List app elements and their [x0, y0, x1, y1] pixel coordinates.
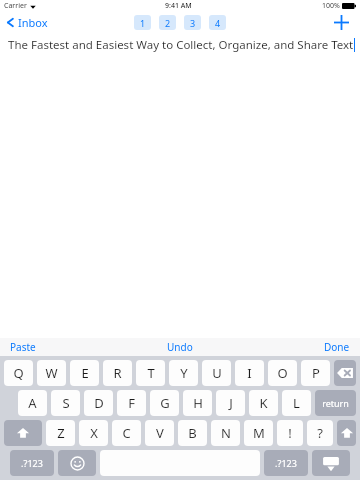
button[interactable]: G: [150, 390, 179, 416]
staticText: A: [28, 394, 37, 412]
button[interactable]: 3: [184, 15, 201, 30]
staticText: F: [128, 394, 135, 412]
staticText: J: [229, 394, 233, 412]
button[interactable]: Shift: [337, 420, 356, 446]
staticText: Y: [180, 364, 188, 382]
button[interactable]: Done: [324, 340, 350, 354]
staticText: The Fastest and Easiest Way to Collect, …: [8, 37, 354, 53]
button[interactable]: T: [136, 360, 165, 386]
button[interactable]: V: [145, 420, 174, 446]
staticText: 9:41 AM: [165, 1, 192, 11]
staticText: V: [156, 424, 164, 442]
button[interactable]: Y: [169, 360, 198, 386]
button[interactable]: 4: [209, 15, 226, 30]
button[interactable]: 1: [134, 15, 151, 30]
staticText: P: [312, 364, 320, 382]
staticText: E: [81, 364, 89, 382]
button[interactable]: O: [268, 360, 297, 386]
staticText: C: [122, 424, 131, 442]
staticText: K: [259, 394, 268, 412]
staticText: Paste: [10, 340, 36, 354]
staticText: Z: [57, 424, 65, 442]
button[interactable]: Hide keyboard: [312, 450, 350, 476]
button[interactable]: .?123: [264, 450, 308, 476]
staticText: D: [94, 394, 104, 412]
button[interactable]: return: [315, 390, 356, 416]
button[interactable]: E: [70, 360, 99, 386]
staticText: T: [147, 364, 155, 382]
staticText: W: [45, 364, 58, 382]
staticText: 100%: [322, 1, 340, 11]
button[interactable]: F: [117, 390, 146, 416]
button[interactable]: B: [178, 420, 207, 446]
staticText: R: [113, 364, 122, 382]
staticText: S: [62, 394, 70, 412]
button[interactable]: L: [282, 390, 311, 416]
staticText: !: [288, 424, 292, 442]
button[interactable]: K: [249, 390, 278, 416]
staticText: .?123: [275, 457, 297, 469]
button[interactable]: N: [211, 420, 240, 446]
staticText: M: [253, 424, 265, 442]
button[interactable]: S: [51, 390, 80, 416]
button[interactable]: Z: [46, 420, 75, 446]
button[interactable]: P: [301, 360, 330, 386]
staticText: .?123: [21, 457, 43, 469]
button[interactable]: D: [84, 390, 113, 416]
button[interactable]: 2: [159, 15, 176, 30]
staticText: H: [193, 394, 203, 412]
staticText: Done: [324, 340, 350, 354]
button[interactable]: C: [112, 420, 141, 446]
staticText: I: [247, 364, 252, 382]
button[interactable]: I: [235, 360, 264, 386]
staticText: Carrier: [4, 1, 27, 11]
button[interactable]: ?: [307, 420, 333, 446]
button[interactable]: .?123: [10, 450, 54, 476]
staticText: Undo: [167, 340, 193, 354]
staticText: B: [188, 424, 197, 442]
staticText: U: [212, 364, 222, 382]
staticText: X: [90, 424, 98, 442]
button[interactable]: M: [244, 420, 273, 446]
button[interactable]: H: [183, 390, 212, 416]
staticText: 4: [215, 17, 221, 29]
button[interactable]: Add: [330, 11, 352, 33]
button[interactable]: Q: [4, 360, 33, 386]
staticText: 2: [165, 17, 171, 29]
button[interactable]: Delete: [334, 360, 356, 386]
button[interactable]: J: [216, 390, 245, 416]
button[interactable]: Inbox: [5, 15, 48, 30]
staticText: G: [160, 394, 170, 412]
button[interactable]: A: [18, 390, 47, 416]
staticText: N: [221, 424, 231, 442]
staticText: O: [277, 364, 288, 382]
button[interactable]: U: [202, 360, 231, 386]
button[interactable]: Shift: [4, 420, 42, 446]
staticText: 3: [190, 17, 196, 29]
button[interactable]: Undo: [167, 340, 193, 354]
button[interactable]: R: [103, 360, 132, 386]
button[interactable]: Paste: [10, 340, 36, 354]
staticText: 1: [140, 17, 146, 29]
button[interactable]: !: [277, 420, 303, 446]
staticText: L: [293, 394, 300, 412]
button[interactable]: Emoji: [58, 450, 96, 476]
button[interactable]: X: [79, 420, 108, 446]
staticText: return: [322, 397, 349, 409]
button[interactable]: W: [37, 360, 66, 386]
staticText: ?: [317, 424, 323, 442]
staticText: Inbox: [18, 15, 48, 30]
staticText: Q: [13, 364, 24, 382]
